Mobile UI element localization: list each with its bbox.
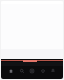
button[interactable]: Favorites	[40, 66, 46, 75]
button[interactable]: Search	[19, 66, 25, 75]
button[interactable]: Home	[8, 66, 14, 75]
button[interactable]: Profile	[50, 66, 56, 75]
button[interactable]: Add	[29, 66, 35, 75]
